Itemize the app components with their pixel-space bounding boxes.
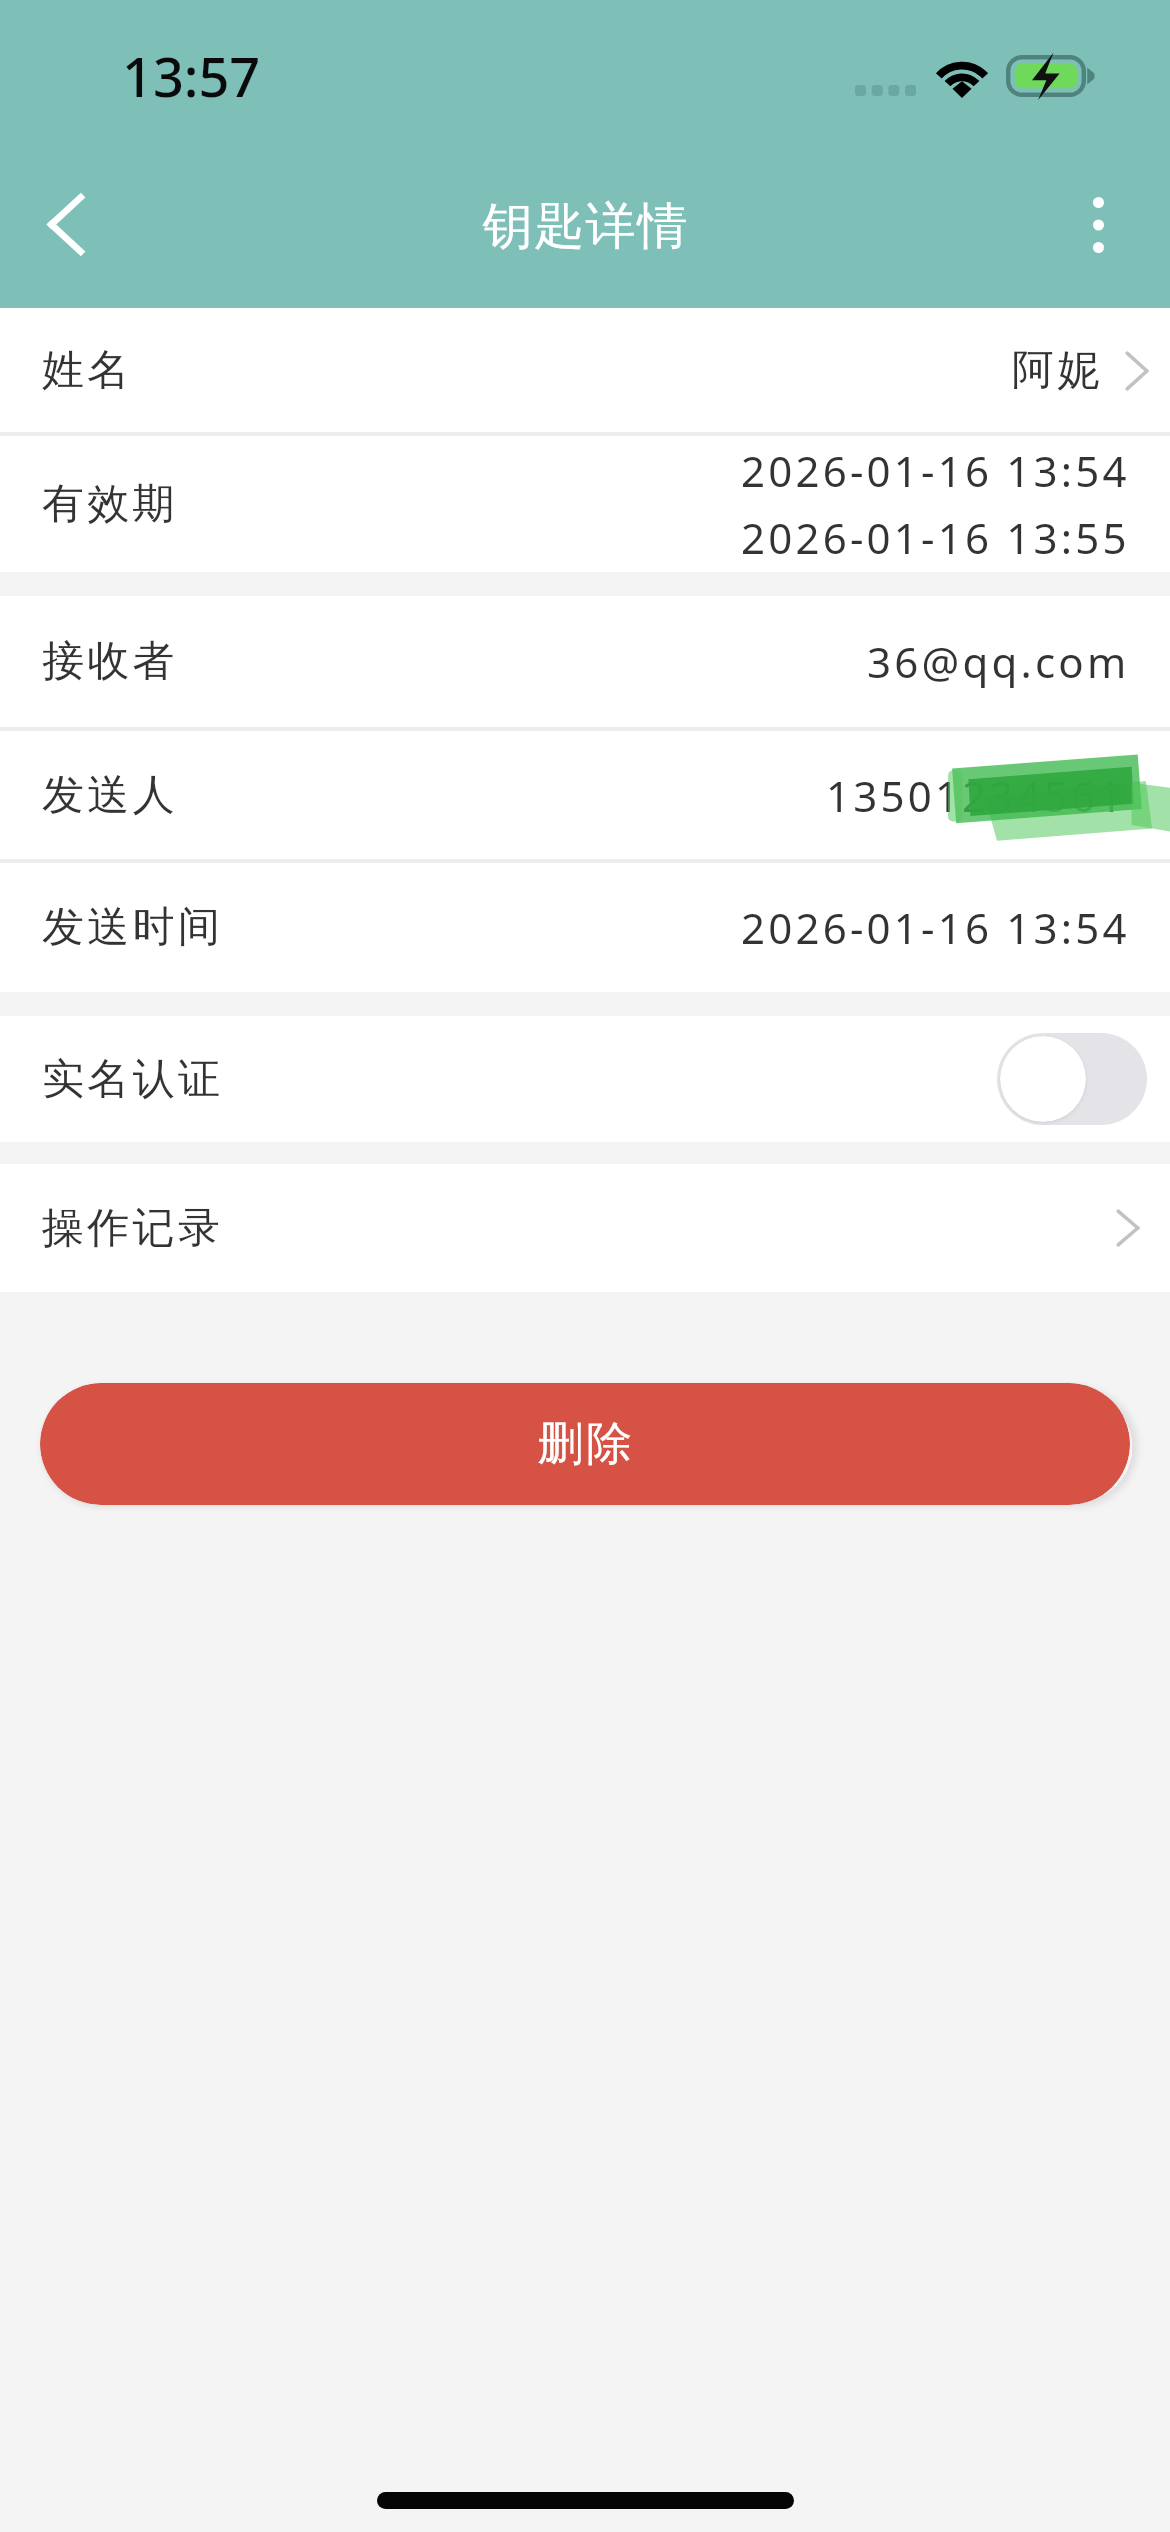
button[interactable]: 有效期 (0, 436, 1170, 572)
button[interactable]: 实名认证 (0, 1016, 1170, 1142)
button[interactable]: Back (0, 155, 131, 294)
button[interactable]: 发送人 (0, 731, 1170, 863)
button[interactable]: 接收者 (0, 596, 1170, 731)
button[interactable]: 发送时间 (0, 863, 1170, 992)
staticText: 阿妮 (1012, 344, 1103, 397)
staticText: 36@qq.com (867, 633, 1130, 690)
button[interactable]: More options (1026, 155, 1170, 294)
button[interactable]: 姓名 (0, 308, 1170, 436)
staticText: 删除 (536, 1415, 634, 1473)
staticText: 13501234561 (826, 767, 1126, 824)
staticText: 发送人 (42, 769, 178, 822)
staticText: 实名认证 (42, 1053, 224, 1106)
staticText: 操作记录 (42, 1202, 224, 1255)
button[interactable]: Real-name verification toggle (997, 1033, 1147, 1125)
staticText: 2026-01-16 13:54 (741, 442, 1130, 499)
staticText: 发送时间 (42, 901, 224, 954)
staticText: 2026-01-16 13:54 (741, 899, 1130, 956)
button[interactable]: 删除 (40, 1383, 1130, 1505)
staticText: 姓名 (42, 344, 133, 397)
staticText: 2026-01-16 13:55 (741, 509, 1130, 566)
button[interactable]: 操作记录 (0, 1164, 1170, 1292)
staticText: 钥匙详情 (482, 195, 688, 258)
staticText: 有效期 (42, 478, 178, 531)
staticText: 13:57 (122, 39, 261, 113)
staticText: 接收者 (42, 635, 178, 688)
